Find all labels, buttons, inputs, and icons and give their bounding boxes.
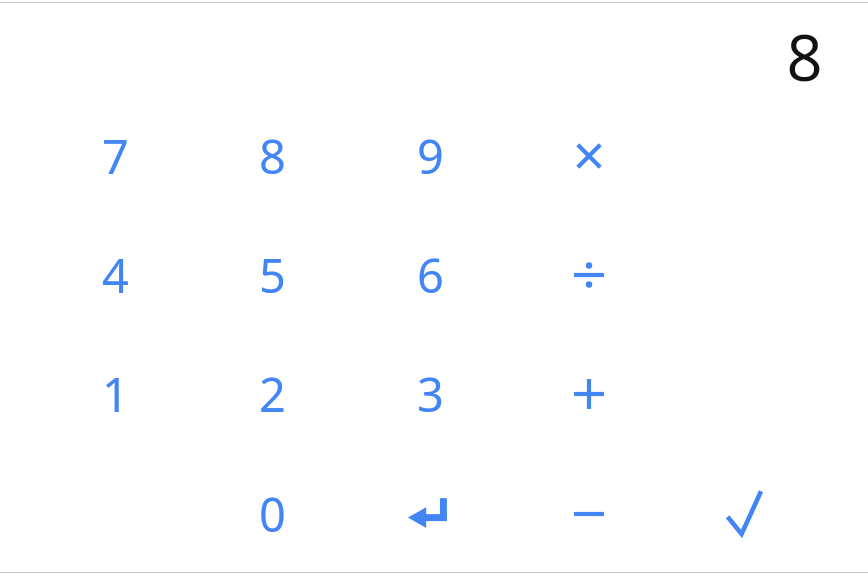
staticText: 1 [102,362,129,426]
button[interactable]: 3 [371,340,489,448]
button[interactable]: 5 [213,221,331,329]
staticText: 3 [417,362,444,426]
button[interactable]: 9 [371,102,489,210]
button[interactable]: Divide [530,221,648,329]
staticText: 8 [259,124,286,188]
staticText: 4 [102,243,129,307]
staticText: 6 [417,243,444,307]
button[interactable]: Minus [530,460,648,568]
button[interactable]: 8 [213,102,331,210]
staticText: 0 [259,482,286,546]
button[interactable]: Square root [688,460,806,568]
button[interactable]: Enter [371,460,489,568]
button[interactable]: 8 [762,14,846,92]
button[interactable]: 6 [371,221,489,329]
staticText: 8 [786,14,823,92]
button[interactable]: 2 [213,340,331,448]
button[interactable]: 0 [213,460,331,568]
staticText: 2 [259,362,286,426]
button[interactable]: 4 [56,221,174,329]
button[interactable]: 1 [56,340,174,448]
button[interactable]: Multiply [530,102,648,210]
button[interactable]: 7 [56,102,174,210]
staticText: 9 [417,124,444,188]
staticText: 5 [259,243,286,307]
button[interactable]: Plus [530,340,648,448]
staticText: 7 [102,124,129,188]
